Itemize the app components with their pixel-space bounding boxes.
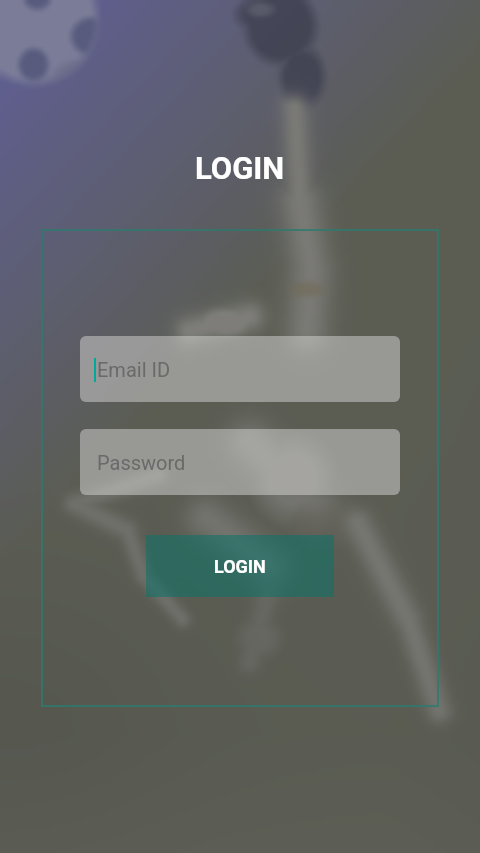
button[interactable]: LOGIN — [146, 535, 334, 597]
button[interactable]: Email ID — [80, 336, 400, 402]
button[interactable]: Password — [80, 429, 400, 495]
staticText: Password — [97, 451, 186, 474]
staticText: Email ID — [97, 358, 171, 381]
staticText: LOGIN — [214, 556, 266, 577]
staticText: LOGIN — [195, 150, 285, 186]
